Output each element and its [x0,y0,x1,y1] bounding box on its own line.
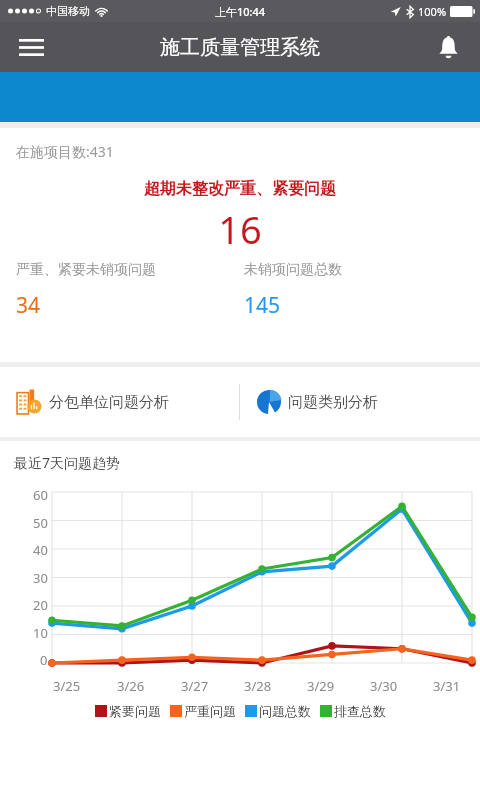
staticText: 40 [33,541,48,559]
staticText: 30 [33,569,48,587]
staticText: 0 [40,651,48,669]
staticText: 上午10:44 [215,4,266,19]
staticText: 10 [33,624,48,642]
staticText: 3/28 [244,677,272,695]
staticText: 20 [33,596,48,614]
staticText: 16 [0,203,480,255]
staticText: 问题总数 [259,703,311,719]
button[interactable]: Menu [8,24,54,70]
staticText: 3/31 [433,677,461,695]
staticText: 3/29 [307,677,335,695]
staticText: 施工质量管理系统 [160,35,320,60]
button[interactable]: Notifications [426,25,470,69]
staticText: 中国移动 [46,4,90,18]
staticText: 100% [418,4,447,19]
staticText: 超期未整改严重、紧要问题 [0,179,480,199]
staticText: 严重问题 [184,703,236,719]
button[interactable]: 分包单位问题分析 [0,367,239,437]
staticText: 在施项目数:431 [16,142,114,161]
button[interactable]: 未销项问题总数 [240,261,480,320]
staticText: 未销项问题总数 [244,261,342,279]
staticText: 3/27 [181,677,209,695]
staticText: 50 [33,514,48,532]
staticText: 最近7天问题趋势 [14,453,121,472]
staticText: 排查总数 [334,703,386,719]
staticText: 3/26 [117,677,145,695]
staticText: 严重、紧要未销项问题 [16,261,156,279]
staticText: 34 [16,291,41,320]
staticText: 分包单位问题分析 [49,393,169,412]
button[interactable]: 问题类别分析 [240,367,480,437]
staticText: 145 [244,291,281,320]
button[interactable]: 严重、紧要未销项问题 [0,261,240,320]
staticText: 3/25 [53,677,81,695]
staticText: 紧要问题 [109,703,161,719]
staticText: 60 [33,486,48,504]
staticText: 3/30 [370,677,398,695]
staticText: 问题类别分析 [288,393,378,412]
